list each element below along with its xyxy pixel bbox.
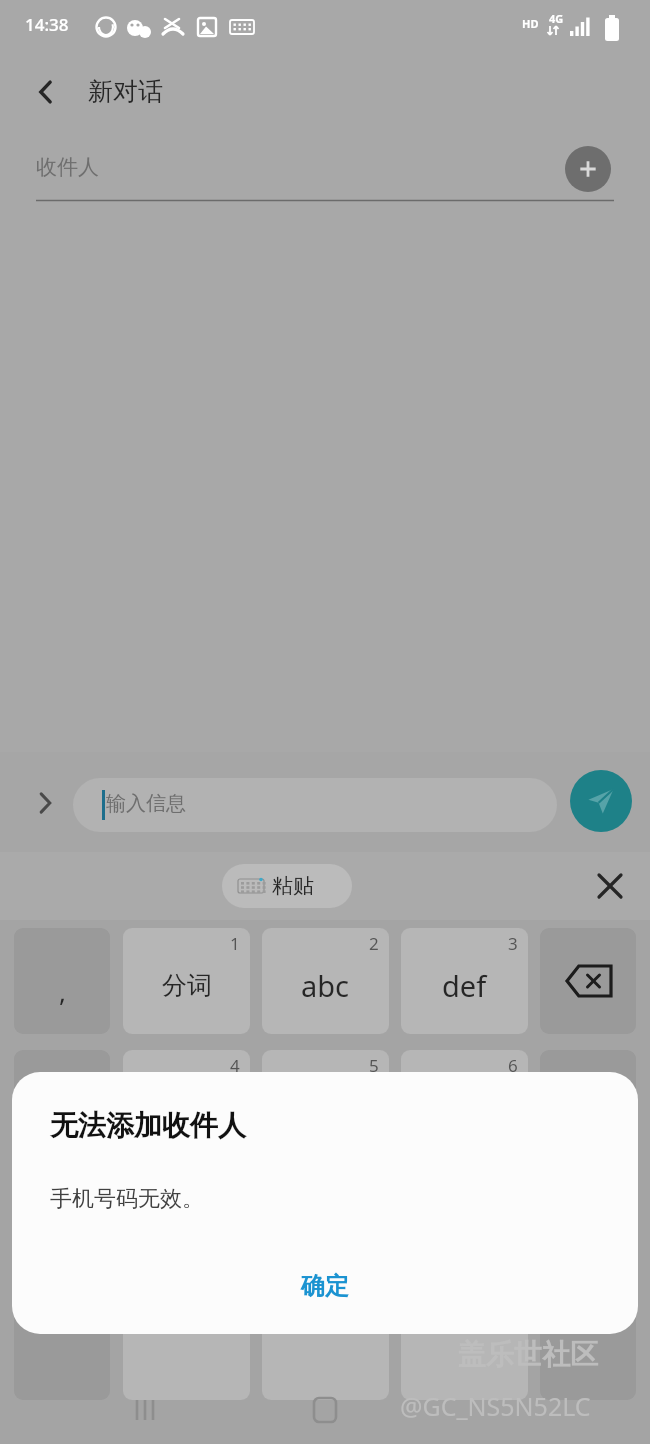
staticText: 6 [508, 1054, 518, 1077]
staticText: abc [301, 966, 350, 1005]
button[interactable]: Add recipient [565, 146, 611, 192]
button[interactable]: Close [584, 860, 636, 912]
staticText: 手机号码无效。 [50, 1185, 204, 1213]
button[interactable] [540, 928, 636, 1034]
button[interactable] [14, 1050, 110, 1156]
staticText: ghi [165, 1088, 209, 1127]
staticText: 确定 [301, 1271, 349, 1301]
button[interactable]: 0 [262, 1294, 389, 1400]
staticText: 盖乐世社区 [458, 1337, 598, 1372]
button[interactable]: 2 [262, 928, 389, 1034]
button[interactable]: , [14, 928, 110, 1034]
staticText: 新对话 [88, 76, 163, 107]
button[interactable]: Recents [113, 1378, 177, 1442]
button[interactable]: 5 [262, 1050, 389, 1156]
staticText: 收件人 [36, 154, 99, 180]
button[interactable]: 7 [123, 1172, 250, 1278]
staticText: 分词 [162, 970, 212, 1001]
staticText: 4G [549, 11, 564, 26]
button[interactable]: 4 [123, 1050, 250, 1156]
button[interactable]: 输入信息 [73, 778, 557, 832]
staticText: 5 [369, 1054, 379, 1077]
staticText: 粘贴 [272, 873, 314, 899]
staticText: 输入信息 [106, 791, 186, 816]
button[interactable] [14, 1294, 110, 1400]
button[interactable]: Back [22, 68, 70, 116]
button[interactable]: 确定 [245, 1254, 405, 1318]
button[interactable]: Expand options [22, 780, 68, 826]
button[interactable]: 8 [262, 1172, 389, 1278]
button[interactable] [14, 1172, 110, 1278]
staticText: , [59, 974, 66, 1009]
staticText: 14:38 [25, 13, 69, 36]
button[interactable]: Back [473, 1378, 537, 1442]
button[interactable]: 3 [401, 928, 528, 1034]
staticText: HD [522, 16, 539, 31]
staticText: 3 [508, 932, 518, 955]
staticText: @GC_NS5N52LC [400, 1389, 591, 1423]
button[interactable]: 粘贴 [222, 864, 352, 908]
staticText: 4 [230, 1054, 240, 1077]
staticText: 1 [230, 932, 240, 955]
staticText: 2 [369, 932, 379, 955]
staticText: def [442, 966, 487, 1005]
staticText: 无法添加收件人 [50, 1108, 246, 1143]
button[interactable] [540, 1294, 636, 1400]
button[interactable]: Send [570, 770, 632, 832]
button[interactable]: * [123, 1294, 250, 1400]
button[interactable]: 6 [401, 1050, 528, 1156]
button[interactable] [540, 1050, 636, 1156]
button[interactable]: # [401, 1294, 528, 1400]
button[interactable]: 1 [123, 928, 250, 1034]
button[interactable]: Home [293, 1378, 357, 1442]
